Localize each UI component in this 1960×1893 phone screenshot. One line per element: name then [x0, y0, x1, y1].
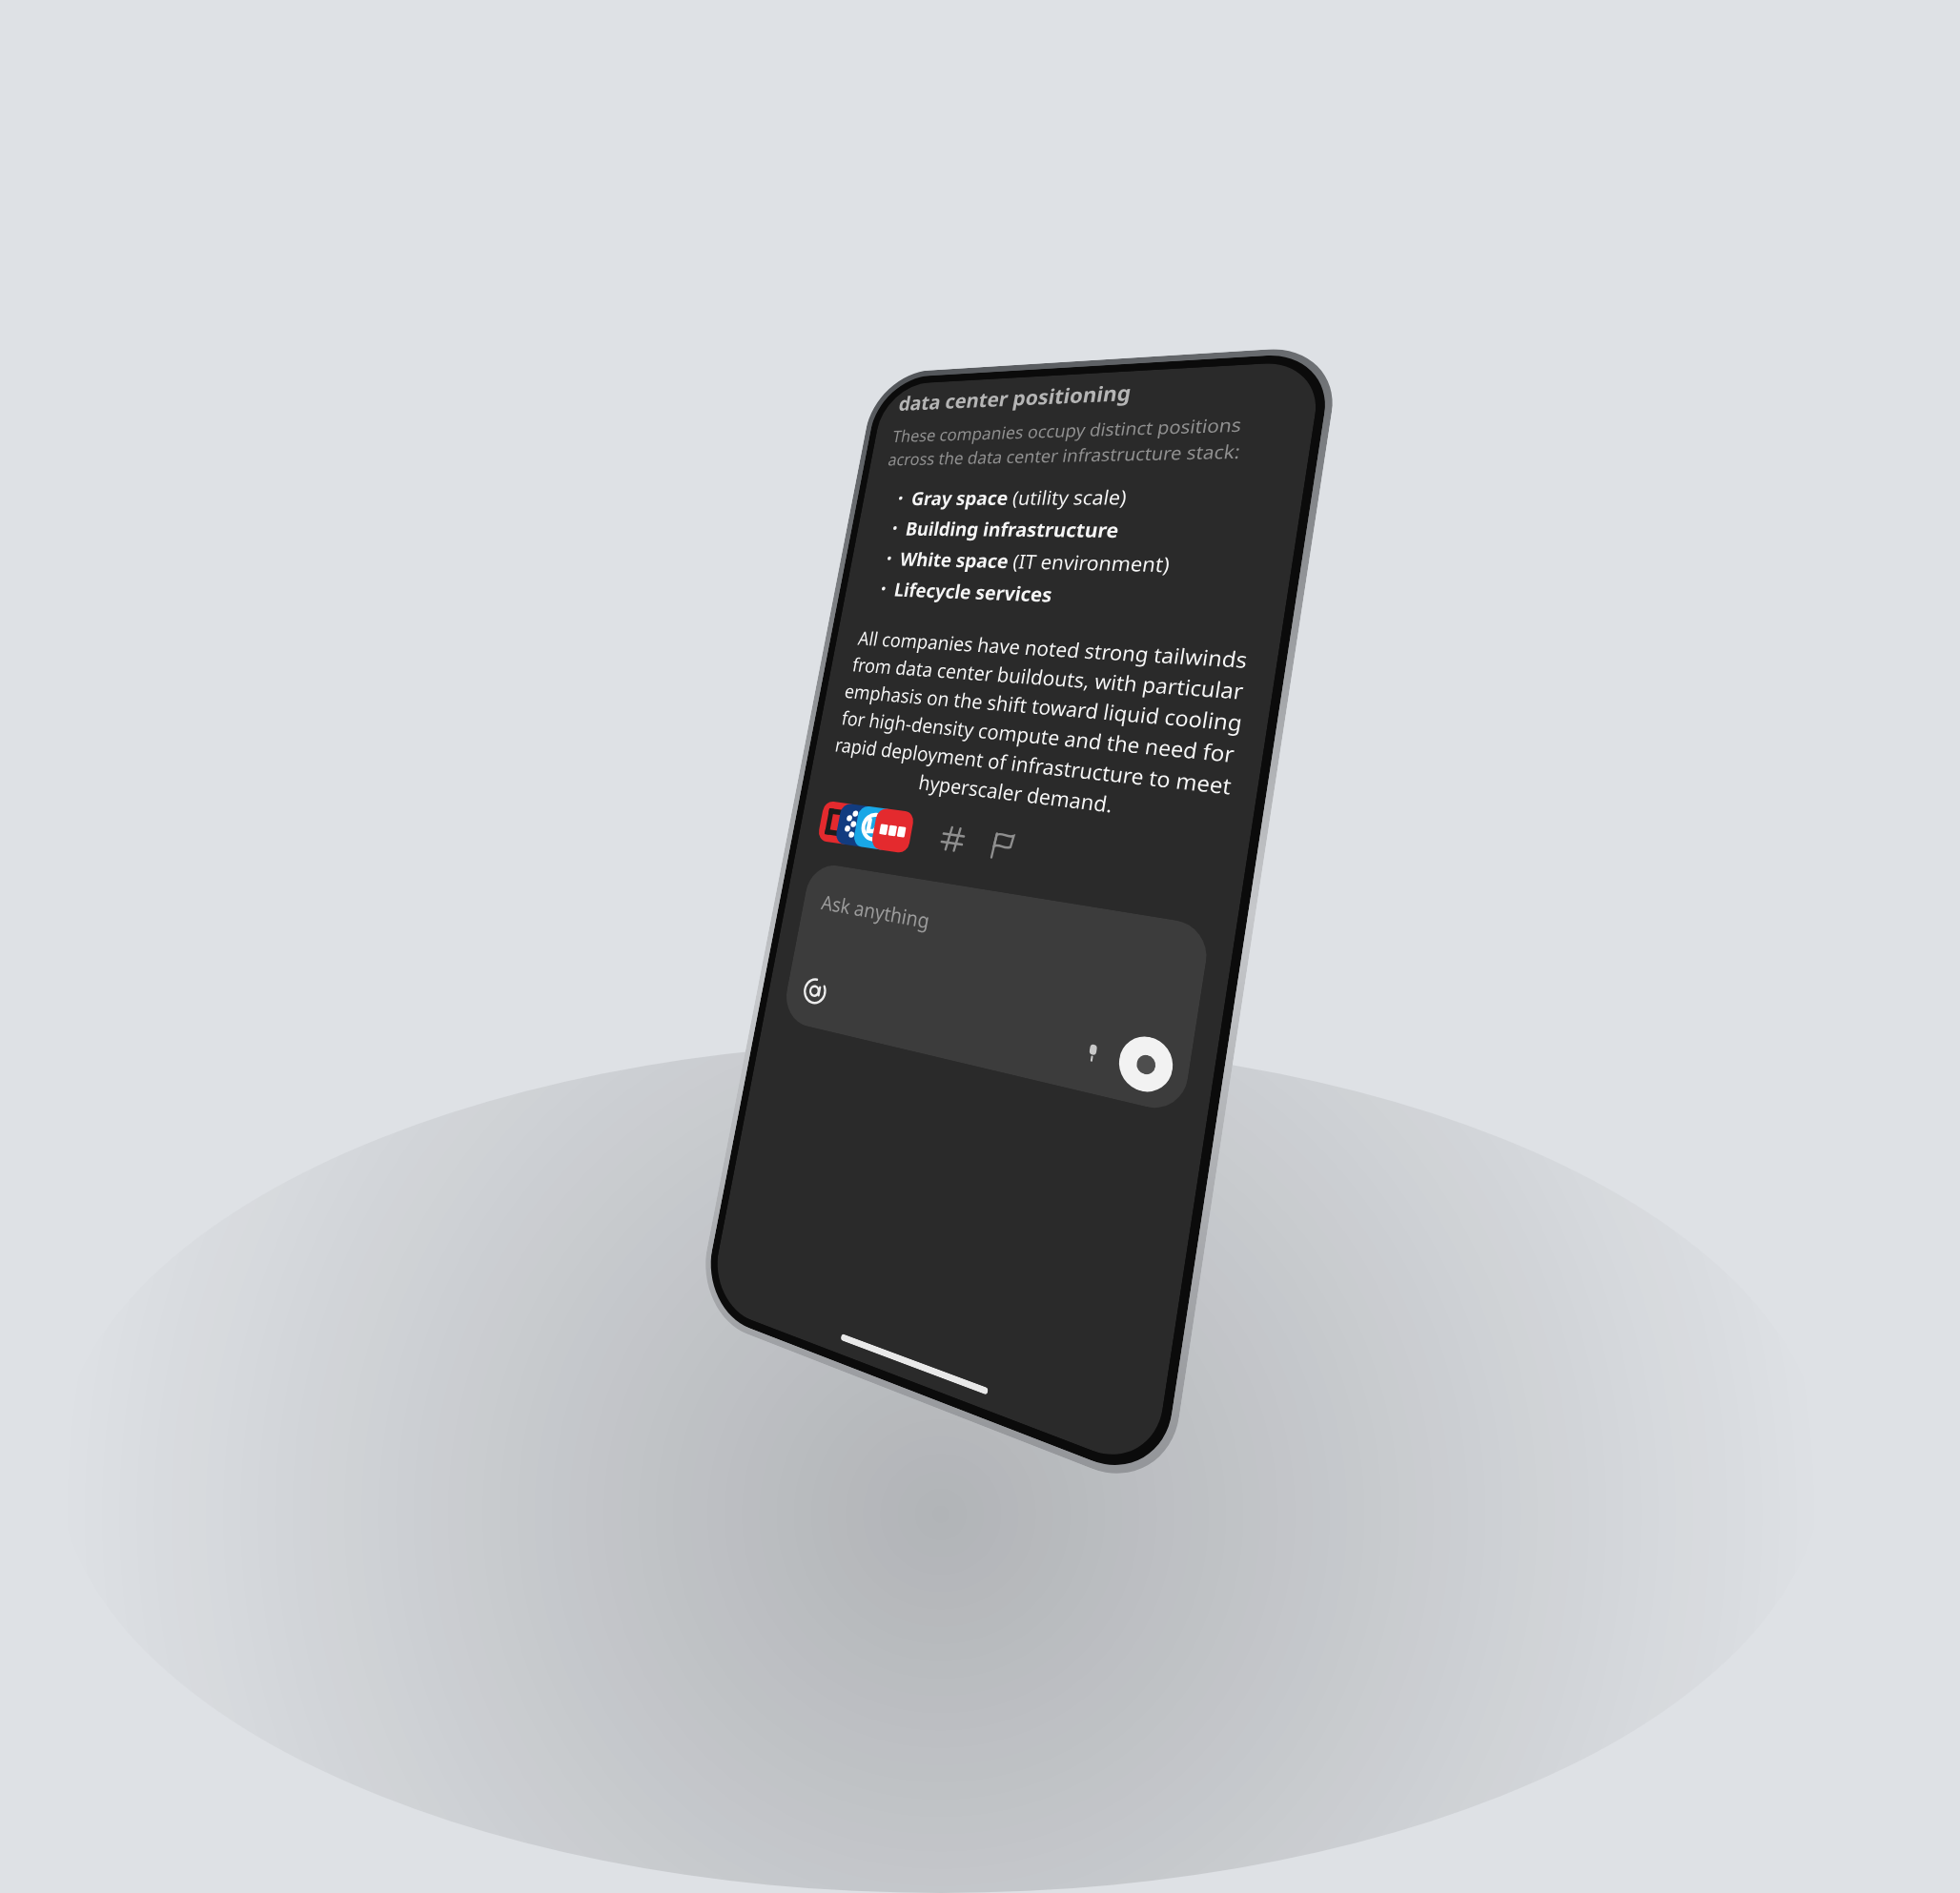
button[interactable]: Report	[981, 824, 1025, 869]
staticText: All companies have noted strong tailwind…	[826, 625, 1255, 834]
staticText: data center positioning	[897, 378, 1134, 416]
staticText: Building infrastructure	[904, 515, 1122, 543]
button[interactable]: Ask anything	[781, 862, 1211, 1115]
button[interactable]: Voice mode	[1115, 1032, 1177, 1097]
staticText: White space (IT environment)	[898, 546, 1172, 578]
button[interactable]: Voice input	[1071, 1029, 1115, 1076]
button[interactable]: Sources	[815, 799, 917, 856]
staticText: Gray space (utility scale)	[910, 483, 1129, 510]
staticText: These companies occupy distinct position…	[886, 410, 1292, 470]
button[interactable]: Tags	[931, 817, 974, 861]
button[interactable]: Mention	[794, 968, 836, 1015]
staticText: Ask anything	[820, 888, 932, 934]
staticText: Lifecycle services	[892, 576, 1055, 607]
